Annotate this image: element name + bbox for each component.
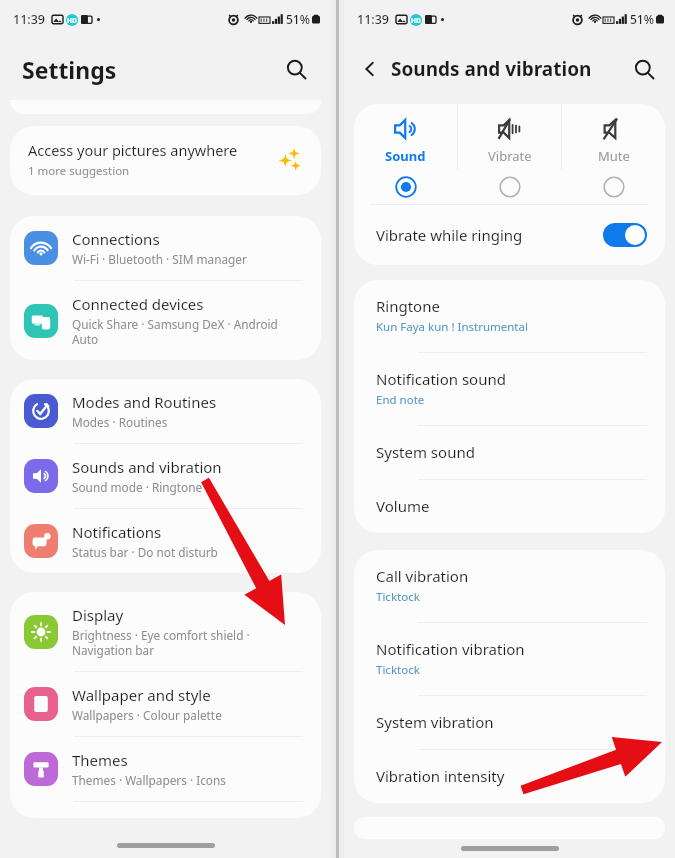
button[interactable]: Sound — [354, 104, 457, 204]
staticText: 11:39 — [13, 11, 46, 28]
staticText: Notifications — [72, 522, 162, 542]
staticText: Mute — [598, 147, 630, 165]
staticText: Vibrate — [488, 147, 532, 165]
button[interactable]: Vibrate while ringing — [354, 205, 665, 265]
staticText: Wallpaper and style — [72, 685, 211, 705]
staticText: Sounds and vibration — [72, 457, 222, 477]
staticText: Wi-Fi · Bluetooth · SIM manager — [72, 251, 247, 267]
staticText: 1 more suggestion — [28, 163, 130, 179]
staticText: Notification vibration — [376, 639, 525, 659]
staticText: Connected devices — [72, 294, 204, 314]
staticText: Status bar · Do not disturb — [72, 544, 218, 560]
staticText: Display — [72, 605, 124, 625]
button[interactable]: System vibration — [354, 696, 665, 749]
staticText: Brightness · Eye comfort shield · Naviga… — [72, 627, 250, 658]
staticText: Ticktock — [376, 589, 420, 605]
button[interactable]: Notification sound — [354, 353, 665, 425]
button[interactable]: Volume — [354, 480, 665, 533]
staticText: Notification sound — [376, 369, 506, 389]
staticText: Quick Share · Samsung DeX · Android Auto — [72, 316, 278, 347]
staticText: HD — [411, 16, 421, 25]
staticText: Ticktock — [376, 662, 420, 678]
button[interactable]: Search — [627, 52, 661, 86]
staticText: Themes · Wallpapers · Icons — [72, 772, 226, 788]
staticText: Sound mode · Ringtone — [72, 479, 203, 495]
staticText: Themes — [72, 750, 128, 770]
button[interactable]: Call vibration — [354, 550, 665, 622]
staticText: Call vibration — [376, 566, 469, 586]
button[interactable]: Vibration intensity — [354, 750, 665, 803]
staticText: Settings — [22, 54, 117, 85]
staticText: Vibrate while ringing — [376, 225, 603, 245]
staticText: Sounds and vibration — [391, 56, 592, 82]
staticText: Ringtone — [376, 296, 440, 316]
staticText: End note — [376, 392, 425, 408]
staticText: Vibration intensity — [376, 766, 505, 786]
button[interactable]: Sounds and vibration — [10, 444, 321, 508]
staticText: Wallpapers · Colour palette — [72, 707, 222, 723]
button[interactable]: Wallpaper and style — [10, 672, 321, 736]
staticText: 51% — [630, 11, 654, 27]
button[interactable]: Search — [279, 52, 313, 86]
staticText: Connections — [72, 229, 160, 249]
button[interactable]: Modes and Routines — [10, 379, 321, 443]
staticText: Modes · Routines — [72, 414, 168, 430]
staticText: Access your pictures anywhere — [28, 140, 238, 160]
staticText: Volume — [376, 496, 430, 516]
staticText: Modes and Routines — [72, 392, 217, 412]
staticText: Kun Faya kun ! Instrumental — [376, 319, 528, 335]
button[interactable]: Back — [352, 51, 388, 87]
staticText: System vibration — [376, 712, 494, 732]
button[interactable]: Vibrate — [458, 104, 561, 204]
button[interactable]: Ringtone — [354, 280, 665, 352]
button[interactable]: Mute — [562, 104, 665, 204]
staticText: HD — [67, 16, 77, 25]
button[interactable]: Themes — [10, 737, 321, 801]
staticText: 11:39 — [357, 11, 390, 28]
button[interactable]: Access your pictures anywhere — [10, 126, 321, 195]
staticText: 51% — [286, 11, 310, 27]
button[interactable]: System sound — [354, 426, 665, 479]
button[interactable]: Connected devices — [10, 281, 321, 360]
staticText: System sound — [376, 442, 475, 462]
button[interactable]: Notifications — [10, 509, 321, 573]
button[interactable]: Notification vibration — [354, 623, 665, 695]
button[interactable]: Connections — [10, 216, 321, 280]
button[interactable]: Display — [10, 592, 321, 671]
staticText: Sound — [385, 147, 426, 165]
